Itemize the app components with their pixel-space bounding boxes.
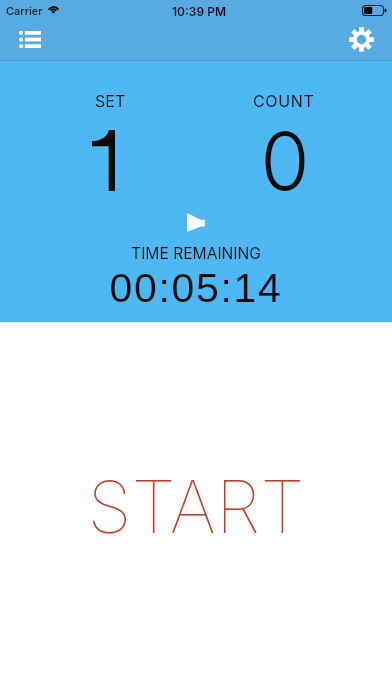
staticText: Carrier [6,4,43,17]
staticText: COUNT [253,91,315,110]
button[interactable]: Settings [339,17,383,61]
staticText: 00:05:14 [0,265,392,311]
button[interactable]: START [0,322,392,696]
staticText: 0 [250,112,320,209]
staticText: 10:39 PM [172,4,226,19]
staticText: SET [95,91,126,110]
staticText: TIME REMAINING [0,244,392,263]
button[interactable]: Menu [7,17,51,61]
staticText: START [87,463,305,550]
